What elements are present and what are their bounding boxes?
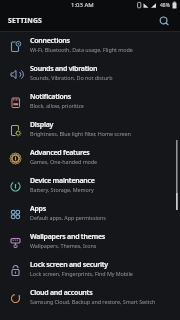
button[interactable]: Wallpapers and themes [0, 228, 180, 256]
button[interactable]: Lock screen and security [0, 256, 180, 284]
button[interactable]: SETTINGS [8, 16, 42, 25]
staticText: Notifications [30, 92, 71, 102]
staticText: Brightness, Blue light filter, Home scre… [30, 130, 131, 137]
button[interactable]: Advanced features [0, 144, 180, 172]
button[interactable] [156, 13, 172, 29]
staticText: Games, One-handed mode [30, 158, 98, 165]
staticText: Block, allow, prioritize [30, 102, 84, 109]
staticText: 1:03 AM [71, 1, 94, 9]
button[interactable]: Cloud and accounts [0, 284, 180, 312]
button[interactable]: Sounds and vibration [0, 60, 180, 88]
staticText: Display [30, 120, 54, 130]
staticText: Connections [30, 36, 70, 46]
button[interactable]: Notifications [0, 88, 180, 116]
staticText: Wallpapers and themes [30, 232, 106, 242]
staticText: Sounds, Vibration, Do not disturb [30, 74, 113, 81]
staticText: Device maintenance [30, 176, 95, 186]
staticText: Battery, Storage, Memory [30, 186, 94, 193]
button[interactable]: Apps [0, 200, 180, 228]
staticText: SETTINGS [8, 16, 42, 25]
staticText: Cloud and accounts [30, 288, 93, 298]
staticText: Sounds and vibration [30, 64, 98, 74]
button[interactable]: Display [0, 116, 180, 144]
staticText: Apps [30, 204, 46, 214]
staticText: Default apps, App permissions [30, 214, 106, 221]
staticText: Advanced features [30, 148, 90, 158]
staticText: Samsung Cloud, Backup and restore, Smart… [30, 298, 156, 305]
staticText: Wallpapers, Themes, Icons [30, 242, 97, 249]
staticText: Wi-Fi, Bluetooth, Data usage, Flight mod… [30, 46, 133, 53]
staticText: Lock screen, Fingerprints, Find My Mobil… [30, 270, 133, 277]
staticText: 48% [160, 2, 170, 9]
button[interactable]: Device maintenance [0, 172, 180, 200]
staticText: Lock screen and security [30, 260, 108, 270]
button[interactable]: Connections [0, 32, 180, 60]
